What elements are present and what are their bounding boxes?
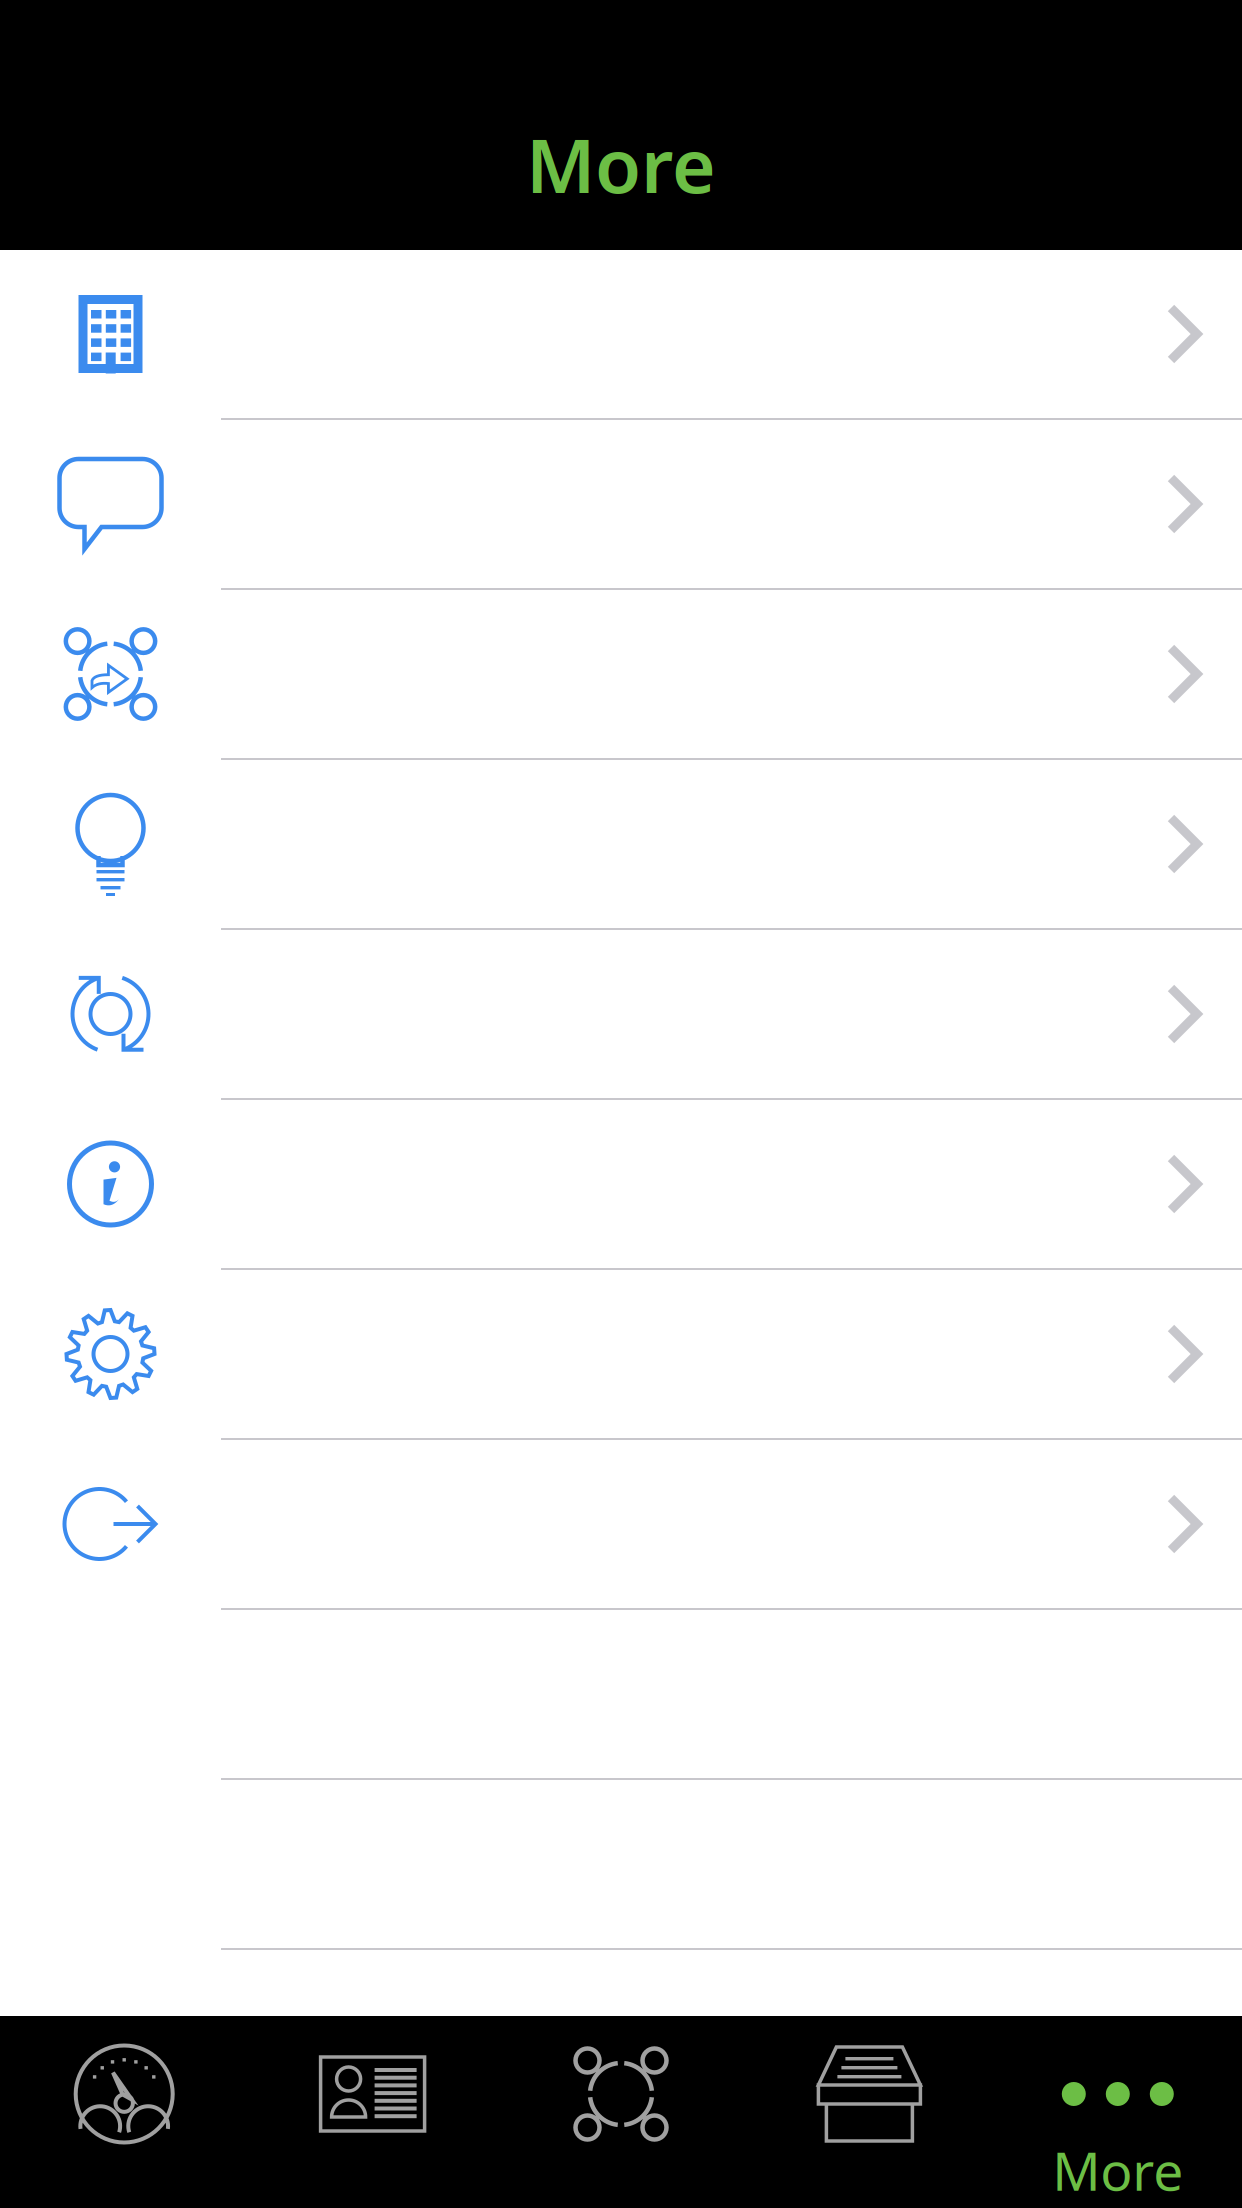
button[interactable]: Network — [497, 2016, 745, 2208]
button[interactable]: Dashboard — [0, 2016, 248, 2208]
button[interactable] — [0, 1440, 1242, 1610]
button[interactable] — [0, 250, 1242, 420]
button[interactable] — [0, 930, 1242, 1100]
button[interactable] — [0, 1100, 1242, 1270]
button[interactable] — [0, 760, 1242, 930]
button[interactable]: Contacts — [248, 2016, 497, 2208]
button[interactable]: More — [994, 2016, 1242, 2208]
staticText: More — [1052, 2135, 1183, 2205]
button[interactable] — [0, 420, 1242, 590]
button[interactable] — [0, 1270, 1242, 1440]
staticText: More — [526, 114, 716, 214]
button[interactable] — [0, 590, 1242, 760]
button[interactable]: Inbox — [745, 2016, 994, 2208]
